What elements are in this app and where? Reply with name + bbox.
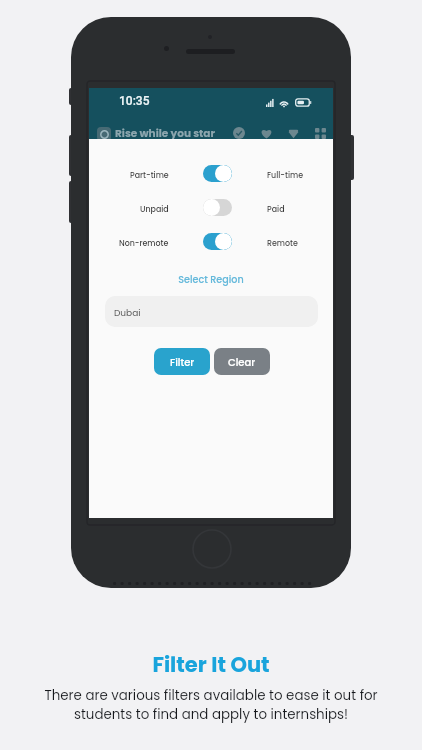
staticText: Dubai [114,307,141,320]
button[interactable]: Disabled [203,199,232,216]
staticText: Clear [228,355,256,369]
staticText: Filter It Out [152,650,270,679]
staticText: Part-time [130,170,169,181]
button[interactable]: Clear [214,348,270,375]
staticText: Select Region [89,273,333,286]
staticText: Unpaid [140,204,169,215]
staticText: Remote [267,238,298,249]
staticText: Filter [170,355,195,369]
button[interactable]: Applied [233,127,245,139]
staticText: Non-remote [119,238,169,249]
button[interactable]: Enabled [203,165,232,182]
button[interactable]: Dubai [105,296,318,327]
staticText: 10:35 [119,94,150,108]
staticText: Full-time [267,170,304,181]
button[interactable]: Filter [154,348,210,375]
staticText: Rise while you star [115,126,215,141]
staticText: Paid [267,204,285,215]
button[interactable]: Favourites [260,127,273,140]
button[interactable]: Menu [315,128,326,139]
button[interactable]: Enabled [203,233,232,250]
staticText: There are various filters available to e… [44,686,378,724]
button[interactable]: Rewards [287,127,300,140]
